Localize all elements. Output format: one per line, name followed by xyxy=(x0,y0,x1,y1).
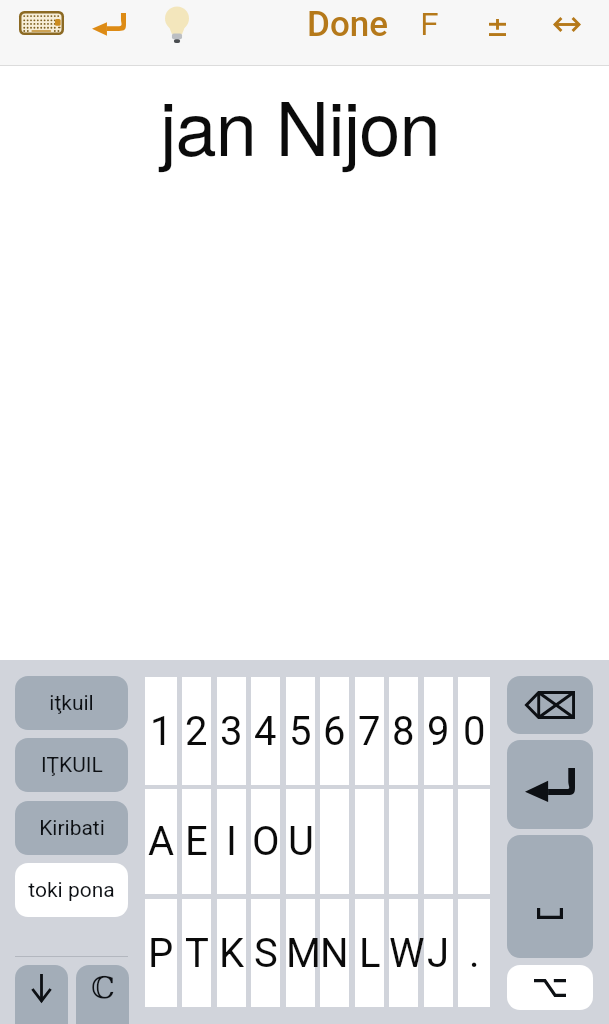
button[interactable]: 1 xyxy=(145,677,177,785)
staticText: 8 xyxy=(392,708,415,755)
button[interactable]: O xyxy=(251,789,280,894)
staticText: 5 xyxy=(289,708,312,755)
button[interactable]: Keyboard layout xyxy=(13,5,69,41)
button[interactable]: 3 xyxy=(217,677,246,785)
staticText: 1 xyxy=(150,708,173,755)
button[interactable]: Resize xyxy=(546,4,588,44)
staticText: 0 xyxy=(463,708,486,755)
staticText: F xyxy=(420,1,439,44)
button[interactable]: T xyxy=(182,899,211,1007)
button[interactable]: Option xyxy=(507,965,593,1010)
button[interactable]: IŢKUIL xyxy=(15,738,128,792)
staticText: jan Nijon xyxy=(160,71,440,177)
button[interactable]: Backspace xyxy=(507,676,593,734)
staticText: K xyxy=(219,930,245,977)
button[interactable]: J xyxy=(424,899,453,1007)
staticText: U xyxy=(288,818,314,865)
button[interactable]: 2 xyxy=(182,677,211,785)
staticText: . xyxy=(469,930,480,977)
staticText: 4 xyxy=(254,708,277,755)
button[interactable]: A xyxy=(145,789,177,894)
button[interactable]: M xyxy=(286,899,315,1007)
button[interactable]: 0 xyxy=(458,677,490,785)
button[interactable]: E xyxy=(182,789,211,894)
staticText: 6 xyxy=(323,708,346,755)
staticText: toki pona xyxy=(28,878,115,903)
staticText: 7 xyxy=(358,708,381,755)
button[interactable]: N xyxy=(320,899,349,1007)
staticText: 3 xyxy=(220,708,243,755)
button[interactable]: . xyxy=(458,899,490,1007)
staticText: Kiribati xyxy=(39,816,105,841)
button[interactable]: U xyxy=(286,789,315,894)
button[interactable]: Plus minus xyxy=(478,7,516,47)
staticText: 9 xyxy=(427,708,450,755)
button[interactable]: Done xyxy=(297,0,397,48)
staticText: T xyxy=(185,930,209,977)
staticText: J xyxy=(427,930,450,977)
button[interactable]: Return xyxy=(86,6,132,42)
staticText: S xyxy=(254,930,278,977)
staticText: I xyxy=(226,818,237,865)
staticText: IŢKUIL xyxy=(41,753,103,778)
staticText: N xyxy=(320,930,349,977)
button[interactable]: P xyxy=(145,899,177,1007)
staticText: A xyxy=(148,818,175,865)
button[interactable]: 8 xyxy=(389,677,418,785)
button[interactable]: F xyxy=(409,0,449,46)
staticText: 2 xyxy=(185,708,208,755)
button[interactable]: L xyxy=(355,899,384,1007)
staticText: ℂ xyxy=(91,970,115,1005)
button[interactable]: 6 xyxy=(320,677,349,785)
staticText: E xyxy=(185,818,208,865)
button[interactable]: Enter xyxy=(507,740,593,829)
button[interactable]: Symbols xyxy=(76,965,129,1024)
staticText: L xyxy=(359,930,381,977)
button[interactable]: 9 xyxy=(424,677,453,785)
button[interactable]: 4 xyxy=(251,677,280,785)
button[interactable]: 7 xyxy=(355,677,384,785)
button[interactable]: 5 xyxy=(286,677,315,785)
button[interactable]: K xyxy=(217,899,246,1007)
button[interactable]: toki pona xyxy=(15,863,128,917)
staticText: iţkuil xyxy=(49,691,94,716)
button[interactable]: I xyxy=(217,789,246,894)
button[interactable]: Space xyxy=(507,835,593,958)
staticText: O xyxy=(252,818,280,865)
button[interactable]: W xyxy=(389,899,418,1007)
staticText: W xyxy=(389,930,418,977)
button[interactable]: S xyxy=(251,899,280,1007)
staticText: P xyxy=(148,930,174,977)
button[interactable]: Hide keyboard xyxy=(15,965,68,1024)
button[interactable]: Kiribati xyxy=(15,801,128,855)
staticText: M xyxy=(286,930,315,977)
button[interactable]: Hint xyxy=(157,0,197,48)
staticText: Done xyxy=(307,4,388,45)
button[interactable]: iţkuil xyxy=(15,676,128,730)
